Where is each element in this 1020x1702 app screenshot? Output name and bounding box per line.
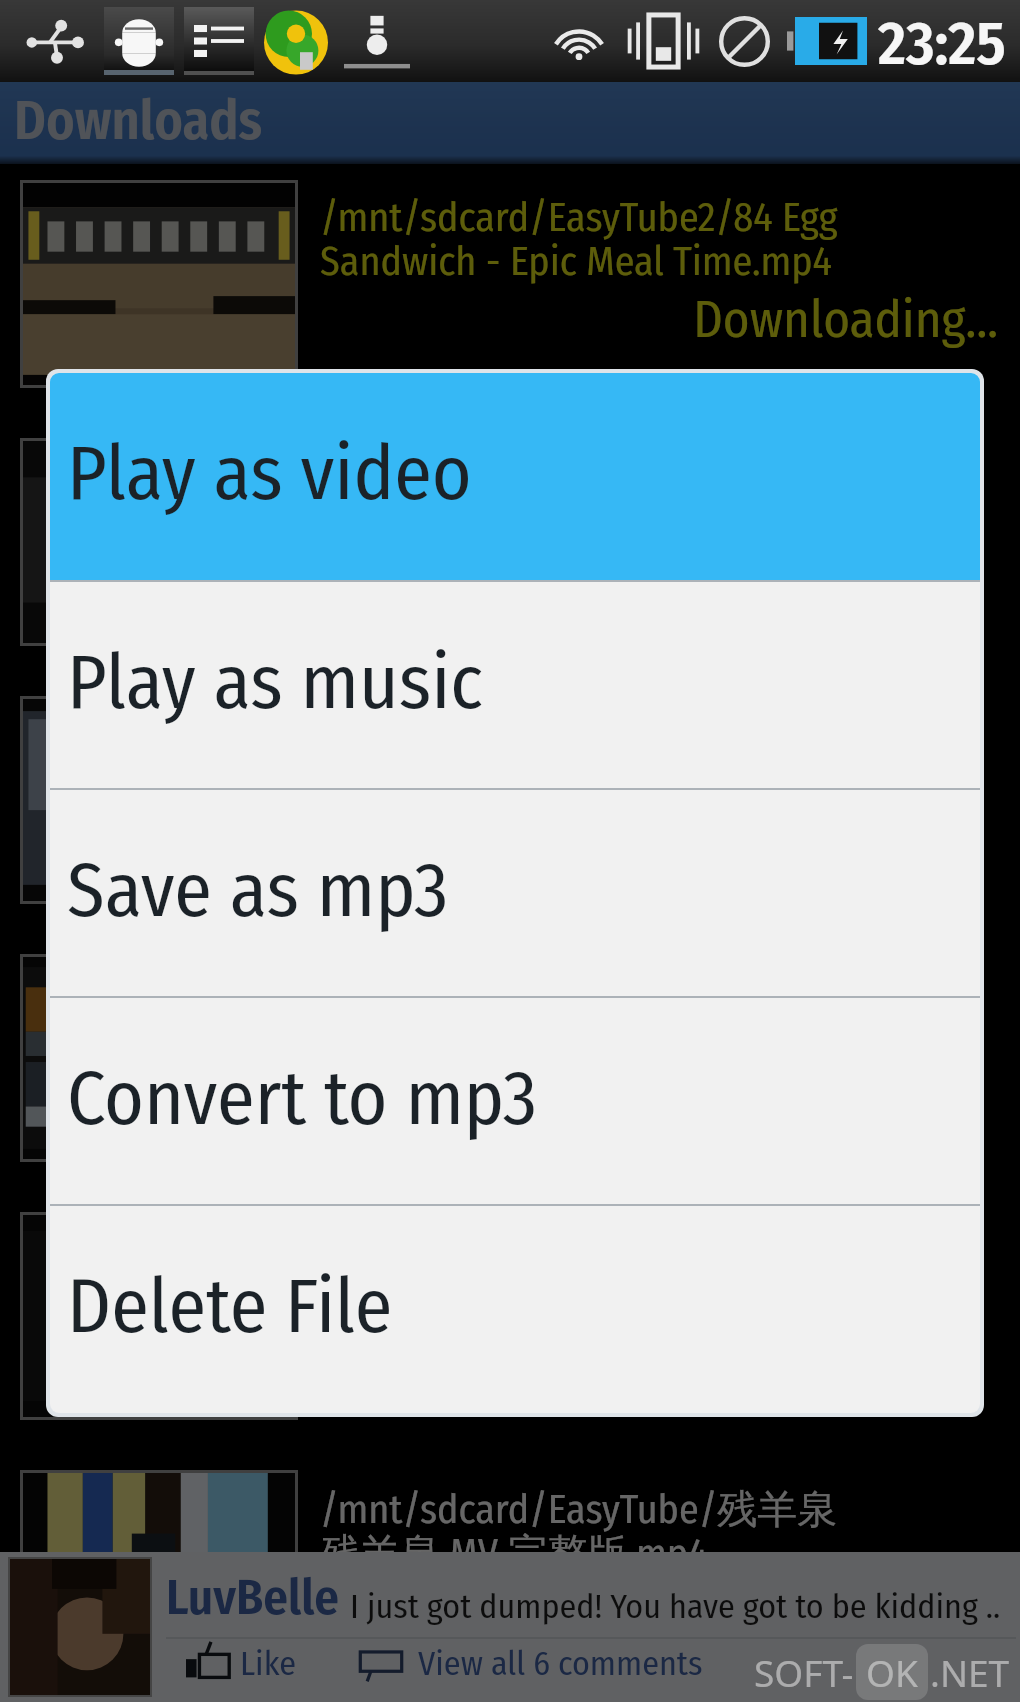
button[interactable]: Play as video	[50, 373, 980, 580]
staticText: /mnt/sdcard/EasyTube2/84 Egg Sandwich - …	[320, 194, 838, 285]
staticText: Save as mp3	[67, 845, 449, 936]
button[interactable]: Convert to mp3	[50, 998, 980, 1204]
staticText: Play as music	[67, 637, 483, 728]
button[interactable]: /mnt/sdcard/EasyTube/video clip name exa…	[0, 954, 1020, 1170]
staticText: Like	[240, 1643, 296, 1684]
button[interactable]: Save as mp3	[50, 790, 980, 996]
other: Vibrate	[625, 10, 702, 72]
staticText: /mnt/sdcard/EasyTube/残羊泉 残羊泉 MV 完整版.mp4	[320, 1484, 838, 1578]
other: Notifications	[184, 7, 254, 75]
staticText: LuvBelle	[166, 1568, 340, 1627]
other: USB debugging	[104, 7, 174, 75]
other: Download	[344, 4, 410, 78]
staticText: View all 6 comments	[418, 1643, 703, 1684]
button[interactable]: /mnt/sdcard/EasyTube/video clip name exa…	[0, 1212, 1020, 1428]
other: App update	[256, 1, 336, 81]
staticText: /mnt/sdcard/EasyTube/video clip name exa…	[320, 452, 876, 543]
staticText: Play as video	[67, 428, 472, 519]
staticText: Downloading...	[320, 289, 998, 350]
button[interactable]: LuvBelle	[0, 1552, 1020, 1702]
staticText: SOFT-	[754, 1647, 854, 1697]
button[interactable]: /mnt/sdcard/EasyTube/video clip name exa…	[0, 438, 1020, 654]
other: Silent mode	[713, 10, 776, 73]
button[interactable]: /mnt/sdcard/EasyTube2/84 Egg Sandwich - …	[0, 180, 1020, 396]
button[interactable]: /mnt/sdcard/EasyTube/残羊泉 残羊泉 MV 完整版.mp4	[0, 1470, 1020, 1686]
staticText: Delete File	[67, 1261, 393, 1352]
staticText: I just got dumped! You have got to be ki…	[350, 1586, 1001, 1627]
staticText: Downloads	[14, 89, 263, 154]
button[interactable]: Play as music	[50, 582, 980, 788]
staticText: /mnt/sdcard/EasyTube/video clip name exa…	[320, 1226, 876, 1317]
button[interactable]: /mnt/sdcard/EasyTube/video clip name exa…	[0, 696, 1020, 912]
staticText: Convert to mp3	[67, 1053, 538, 1144]
staticText: 23:25	[878, 7, 1006, 80]
other: Battery	[787, 17, 867, 65]
staticText: /mnt/sdcard/EasyTube/video clip name exa…	[320, 710, 876, 801]
staticText: /mnt/sdcard/EasyTube/video clip name exa…	[320, 968, 876, 1059]
staticText: OK	[866, 1647, 918, 1697]
other: USB connected	[22, 6, 92, 76]
staticText: .NET	[930, 1647, 1010, 1697]
other: Wi-Fi	[545, 7, 613, 75]
button[interactable]: Delete File	[50, 1206, 980, 1412]
